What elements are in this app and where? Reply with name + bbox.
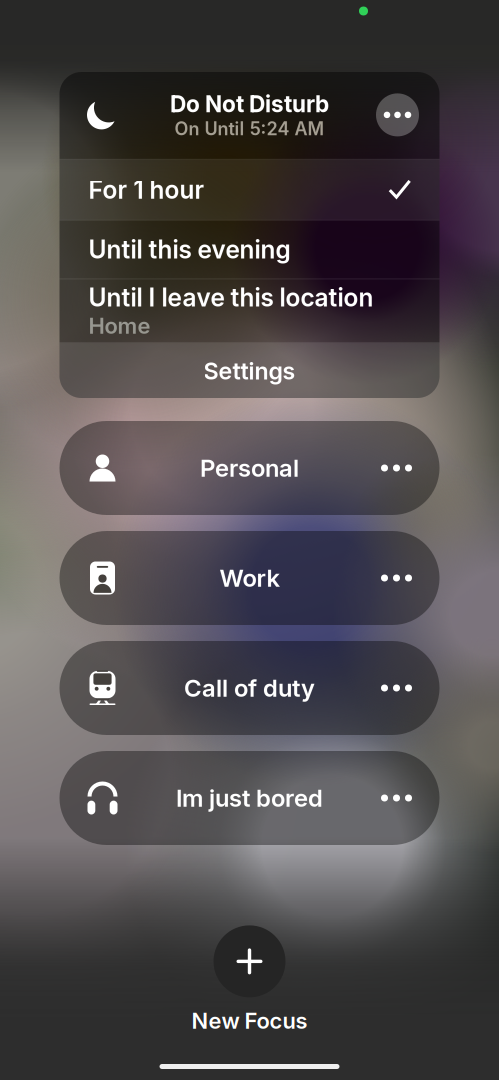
staticText: Do Not Disturb — [170, 90, 329, 118]
staticText: Call of duty — [184, 673, 315, 702]
staticText: For 1 hour — [88, 175, 204, 205]
button[interactable]: More options — [355, 71, 439, 159]
button[interactable]: Work — [59, 531, 439, 625]
staticText: Work — [219, 563, 279, 592]
button[interactable]: Until this evening — [59, 220, 439, 278]
staticText: Until I leave this location — [88, 283, 373, 312]
staticText: Im just bored — [176, 783, 323, 812]
button[interactable]: Until I leave this location — [59, 279, 439, 342]
staticText: On Until 5:24 AM — [174, 118, 324, 139]
button[interactable]: Im just bored — [59, 751, 439, 845]
staticText: Settings — [203, 357, 295, 385]
staticText: Until this evening — [88, 235, 290, 264]
staticText: Personal — [200, 453, 299, 482]
button[interactable]: Settings — [59, 343, 439, 399]
button[interactable]: For 1 hour — [59, 160, 439, 220]
staticText: New Focus — [191, 1007, 307, 1034]
button[interactable]: New Focus — [191, 925, 307, 1034]
button[interactable]: Call of duty — [59, 641, 439, 735]
button[interactable]: Personal — [59, 421, 439, 515]
staticText: Home — [88, 312, 150, 339]
